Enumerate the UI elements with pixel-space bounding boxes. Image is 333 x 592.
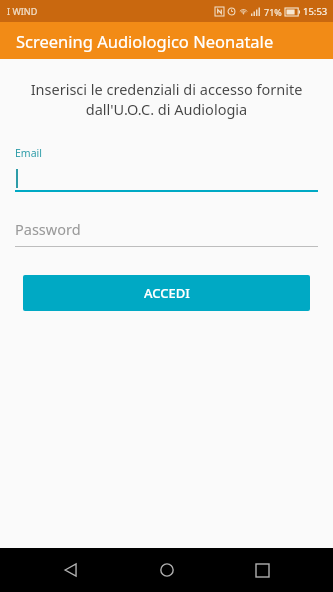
staticText: I WIND bbox=[7, 5, 38, 17]
button[interactable]: Back bbox=[47, 548, 95, 592]
button[interactable]: Recent apps bbox=[238, 548, 286, 592]
button[interactable]: Password bbox=[15, 218, 318, 247]
button[interactable]: Home bbox=[143, 548, 191, 592]
staticText: ACCEDI bbox=[144, 284, 190, 302]
button[interactable]: Email bbox=[15, 146, 318, 192]
staticText: Inserisci le credenziali di accesso forn… bbox=[26, 79, 307, 120]
staticText: Screening Audiologico Neonatale bbox=[16, 30, 274, 52]
staticText: Password bbox=[15, 219, 81, 239]
staticText: 71% bbox=[264, 6, 282, 18]
button[interactable]: ACCEDI bbox=[23, 275, 310, 311]
staticText: Email bbox=[15, 146, 42, 160]
staticText: 15:53 bbox=[303, 5, 328, 18]
